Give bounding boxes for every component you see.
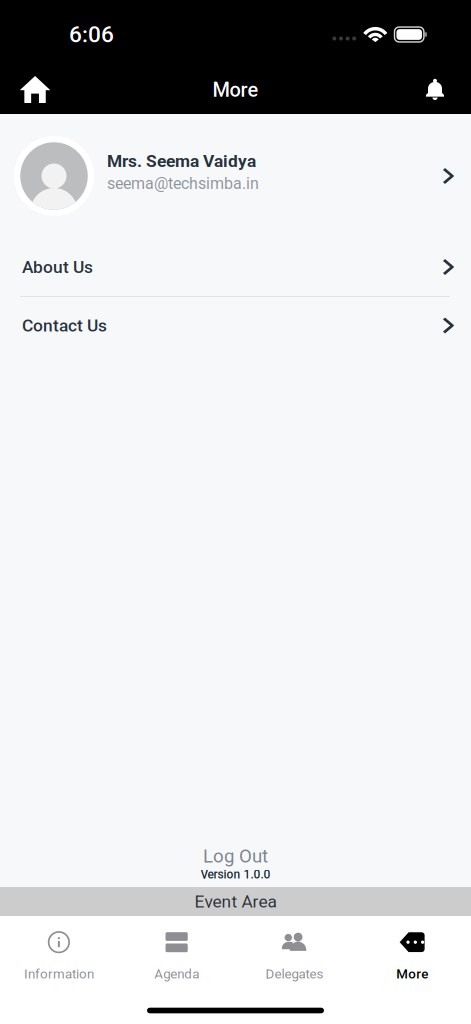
- staticText: Event Area: [194, 891, 276, 912]
- button[interactable]: Home: [8, 62, 62, 116]
- staticText: Mrs. Seema Vaidya: [107, 151, 256, 171]
- button[interactable]: Log Out: [0, 844, 471, 887]
- staticText: More: [396, 966, 428, 982]
- button[interactable]: Contact Us: [0, 297, 471, 354]
- button[interactable]: Delegates: [235, 922, 353, 991]
- staticText: seema@techsimba.in: [107, 174, 259, 193]
- staticText: Information: [24, 966, 94, 982]
- staticText: About Us: [22, 257, 93, 277]
- staticText: Version 1.0.0: [200, 867, 270, 882]
- staticText: Agenda: [154, 966, 199, 982]
- staticText: More: [212, 78, 258, 102]
- button[interactable]: Notifications: [408, 62, 462, 116]
- button[interactable]: Agenda: [118, 922, 236, 991]
- staticText: Delegates: [265, 966, 323, 982]
- staticText: Log Out: [203, 845, 268, 867]
- staticText: 6:06: [69, 21, 114, 48]
- button[interactable]: About Us: [0, 238, 471, 296]
- staticText: Contact Us: [22, 315, 107, 336]
- button[interactable]: Information: [0, 922, 118, 991]
- button[interactable]: More: [353, 922, 471, 991]
- button[interactable]: Mrs. Seema Vaidya: [0, 114, 471, 238]
